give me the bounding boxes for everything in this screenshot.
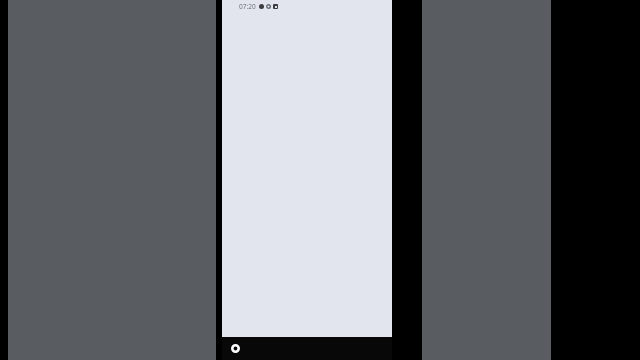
- button[interactable]: Home: [227, 340, 244, 357]
- staticText: 07:20: [239, 2, 256, 11]
